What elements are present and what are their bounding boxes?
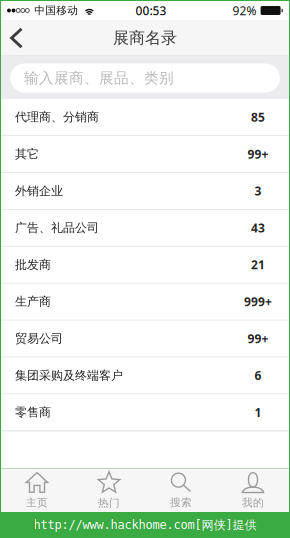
staticText: 3 [254, 183, 261, 199]
staticText: 外销企业 [15, 183, 63, 198]
staticText: 中国移动 [34, 4, 78, 17]
button[interactable]: 主页 [1, 469, 73, 512]
staticText: 广告、礼品公司 [15, 220, 99, 235]
staticText: 搜索 [170, 496, 192, 509]
staticText: 零售商 [15, 405, 51, 420]
staticText: 主页 [26, 496, 48, 509]
button[interactable]: 热门 [73, 469, 145, 512]
staticText: 代理商、分销商 [15, 110, 99, 124]
staticText: 热门 [98, 496, 120, 509]
staticText: 展商名录 [113, 28, 177, 48]
staticText: 6 [254, 367, 261, 383]
staticText: 99+ [247, 146, 268, 162]
button[interactable]: 其它 [1, 136, 289, 173]
staticText: 1 [254, 404, 261, 420]
staticText: 43 [251, 220, 265, 236]
button[interactable]: 代理商、分销商 [1, 99, 289, 136]
button[interactable]: 返回 [1, 20, 36, 56]
staticText: 85 [251, 109, 265, 125]
button[interactable]: 集团采购及终端客户 [1, 357, 289, 394]
button[interactable]: 输入展商、展品、类别 [1, 56, 289, 99]
button[interactable]: 我的 [217, 469, 289, 512]
button[interactable]: 生产商 [1, 283, 289, 320]
button[interactable]: 搜索 [145, 469, 217, 512]
staticText: 集团采购及终端客户 [15, 368, 123, 383]
button[interactable]: 零售商 [1, 394, 289, 431]
staticText: 我的 [242, 496, 264, 509]
staticText: 其它 [15, 147, 39, 161]
button[interactable]: 外销企业 [1, 173, 289, 210]
staticText: 21 [251, 257, 265, 273]
staticText: 生产商 [15, 294, 51, 309]
staticText: http://www.hackhome.com[网侠]提供 [33, 518, 256, 532]
staticText: 批发商 [15, 257, 51, 272]
button[interactable]: 广告、礼品公司 [1, 210, 289, 247]
staticText: 92% [233, 2, 257, 18]
staticText: 999+ [244, 294, 272, 309]
staticText: 输入展商、展品、类别 [24, 69, 174, 87]
staticText: 99+ [247, 330, 268, 346]
staticText: 贸易公司 [15, 331, 63, 346]
button[interactable]: 批发商 [1, 247, 289, 283]
button[interactable]: 贸易公司 [1, 320, 289, 357]
staticText: 00:53 [135, 2, 166, 18]
